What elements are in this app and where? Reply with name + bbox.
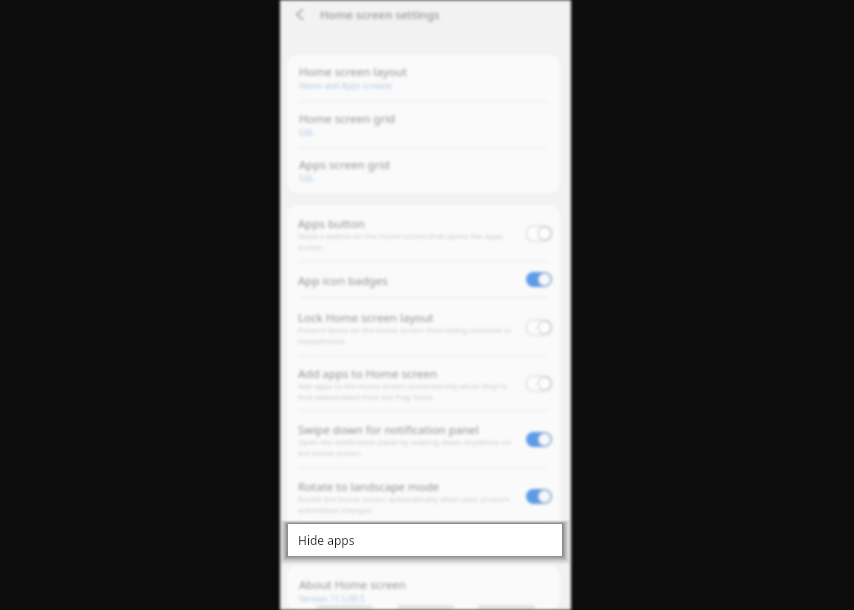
button[interactable]: Swipe down for notification panel	[287, 411, 560, 467]
staticText: Apps button	[298, 216, 365, 232]
button[interactable]: About Home screen	[287, 573, 560, 610]
button[interactable]: Toggle	[526, 376, 552, 391]
button[interactable]: Apps screen grid	[287, 149, 560, 193]
staticText: Rotate to landscape mode	[298, 479, 440, 495]
button[interactable]: Hide apps	[288, 524, 562, 556]
button[interactable]: Lock Home screen layout	[287, 298, 560, 356]
staticText: Home screen settings	[320, 7, 440, 23]
button[interactable]: Home screen layout	[287, 55, 560, 101]
staticText: Prevent items on the Home screen from be…	[298, 325, 516, 346]
staticText: App icon badges	[298, 273, 388, 289]
staticText: Rotate the Home screen automatically whe…	[298, 494, 516, 515]
button[interactable]: Toggle	[526, 489, 552, 504]
button[interactable]: Home screen grid	[287, 102, 560, 148]
staticText: Hide apps	[298, 532, 355, 548]
staticText: Open the notification panel by swiping d…	[298, 437, 516, 458]
button[interactable]: Navigation	[478, 605, 535, 609]
button[interactable]: Add apps to Home screen	[287, 357, 560, 410]
button[interactable]	[287, 525, 560, 556]
staticText: Lock Home screen layout	[298, 310, 434, 326]
button[interactable]: App icon badges	[287, 262, 560, 297]
staticText: Home screen grid	[299, 111, 396, 127]
staticText: Add apps to the Home screen automaticall…	[298, 381, 516, 402]
staticText: Version 11.5.00.5	[299, 593, 365, 604]
staticText: Home and Apps screens	[299, 80, 392, 91]
staticText: Apps screen grid	[299, 157, 390, 173]
button[interactable]: Back	[291, 6, 308, 23]
button[interactable]: Navigation	[397, 605, 454, 609]
staticText: Add apps to Home screen	[298, 366, 438, 382]
button[interactable]: Rotate to landscape mode	[287, 468, 560, 524]
button[interactable]: Toggle	[526, 226, 552, 241]
button[interactable]: Toggle	[526, 320, 552, 335]
staticText: Show a button on the Home screen that op…	[298, 231, 516, 252]
staticText: Swipe down for notification panel	[298, 422, 479, 438]
staticText: Home screen layout	[299, 64, 407, 80]
button[interactable]: Toggle	[526, 272, 552, 287]
staticText: 5X6	[299, 173, 314, 184]
staticText: 5X6	[299, 127, 314, 138]
button[interactable]: Navigation	[316, 605, 373, 609]
button[interactable]: Apps button	[287, 205, 560, 261]
staticText: About Home screen	[299, 577, 406, 593]
button[interactable]: Toggle	[526, 432, 552, 447]
